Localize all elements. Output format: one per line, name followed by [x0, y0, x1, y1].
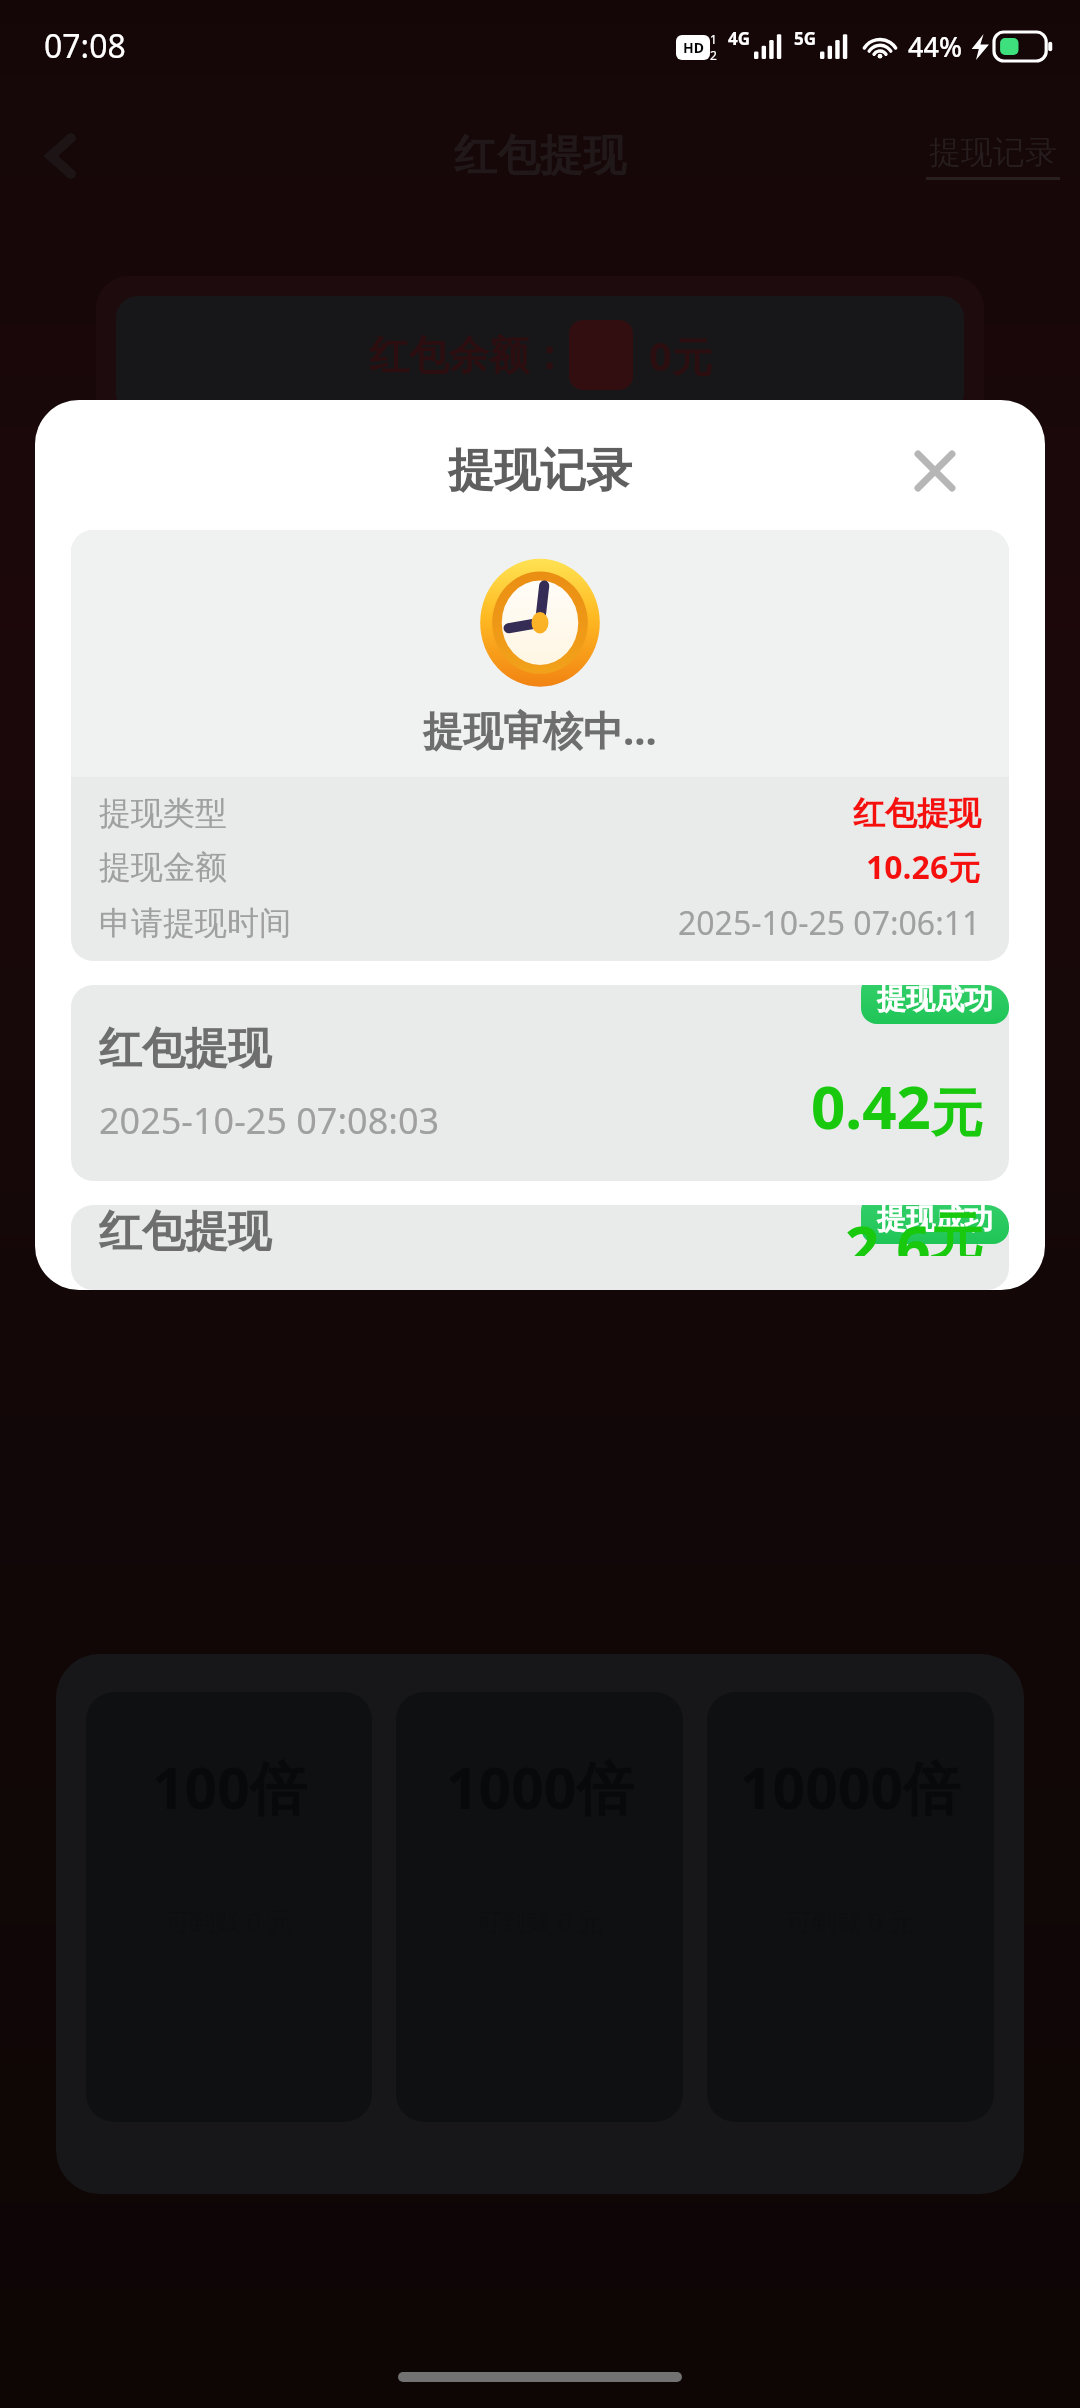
staticText: 07:08	[44, 24, 126, 68]
staticText: 0元	[649, 328, 712, 383]
button[interactable]: 红包提现	[71, 985, 1009, 1181]
button[interactable]: 红包提现	[71, 1205, 1009, 1290]
staticText: 2	[710, 47, 717, 63]
staticText: 元	[931, 1205, 983, 1256]
staticText: 提现金额	[99, 847, 227, 887]
staticText: 红包余额：	[369, 330, 569, 380]
staticText: 申请提现时间	[99, 903, 291, 943]
staticText: 提现成功	[877, 1205, 993, 1238]
staticText: 5G	[794, 27, 817, 50]
button[interactable]: Close	[897, 433, 973, 509]
staticText: 提现成功	[877, 985, 993, 1018]
staticText: HD	[683, 38, 704, 57]
staticText: 提现记录	[929, 132, 1057, 172]
staticText: 红包提现	[454, 129, 626, 183]
staticText: 1000倍	[446, 1748, 634, 1826]
staticText: 1	[710, 31, 717, 47]
staticText: 2025-10-25 07:06:11	[678, 901, 981, 945]
button[interactable]: Back	[26, 119, 100, 193]
staticText: 提现类型	[99, 793, 227, 833]
staticText: 红包提现	[99, 1205, 271, 1259]
staticText: 4G	[728, 27, 751, 50]
staticText: 0.42	[811, 1065, 931, 1147]
staticText: 提现审核中...	[423, 702, 657, 757]
staticText: 红包提现	[853, 793, 981, 833]
staticText: 2.6	[845, 1205, 931, 1256]
staticText: 44%	[908, 28, 962, 65]
staticText: 红包提现	[99, 1022, 271, 1076]
button[interactable]: 提现记录	[926, 132, 1060, 180]
staticText: 提现记录	[448, 442, 632, 500]
staticText: 10000倍	[740, 1748, 961, 1826]
staticText: 元	[931, 1081, 983, 1147]
staticText: 2025-10-25 07:08:03	[99, 1096, 440, 1145]
staticText: 100倍	[152, 1748, 307, 1826]
staticText: 10.26元	[866, 845, 981, 889]
